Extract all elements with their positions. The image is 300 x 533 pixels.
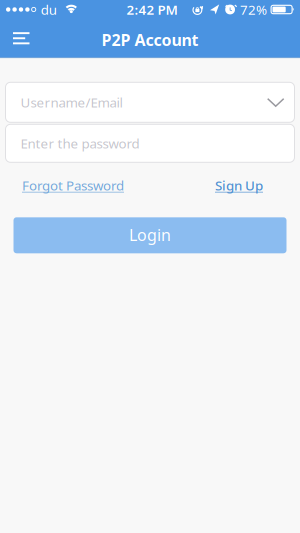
staticText: Sign Up	[215, 176, 263, 194]
staticText: du	[41, 1, 57, 18]
button[interactable]: Menu	[0, 22, 41, 54]
button[interactable]: Login	[0, 217, 300, 253]
button[interactable]: Username/Email	[0, 82, 300, 122]
staticText: Login	[129, 224, 171, 245]
button[interactable]: Enter the password	[0, 124, 300, 162]
staticText: 2:42 PM	[126, 1, 177, 18]
staticText: Enter the password	[20, 134, 139, 152]
staticText: 72%	[240, 1, 267, 18]
staticText: Forgot Password	[22, 176, 124, 194]
staticText: P2P Account	[101, 29, 198, 50]
button[interactable]: Sign Up	[215, 176, 263, 194]
staticText: Username/Email	[20, 93, 122, 111]
button[interactable]: Forgot Password	[22, 176, 124, 194]
